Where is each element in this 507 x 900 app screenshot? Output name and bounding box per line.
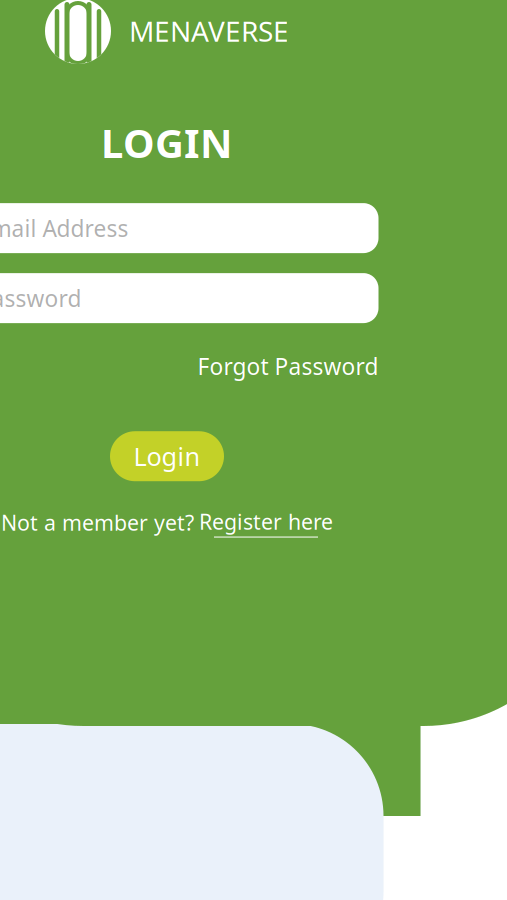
button[interactable]: Email Address — [0, 203, 378, 253]
button[interactable]: Login — [110, 431, 224, 481]
button[interactable]: Not a member yet? — [1, 507, 333, 537]
staticText: Register here — [199, 507, 333, 535]
staticText: Login — [133, 439, 200, 473]
button[interactable]: Forgot Password — [197, 345, 378, 387]
staticText: LOGIN — [101, 116, 233, 169]
staticText: MENAVERSE — [129, 12, 289, 50]
button[interactable]: Password — [0, 273, 378, 323]
staticText: Email Address — [0, 213, 128, 243]
staticText: Not a member yet? — [1, 508, 194, 536]
staticText: Forgot Password — [197, 351, 378, 381]
staticText: Password — [0, 283, 81, 313]
